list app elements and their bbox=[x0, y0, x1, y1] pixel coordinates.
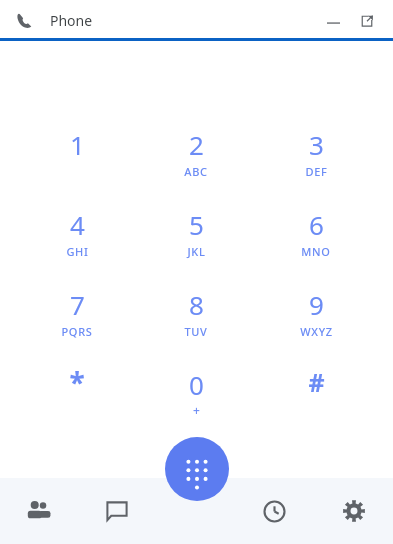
staticText: * bbox=[69, 363, 85, 401]
button[interactable]: Recents bbox=[235, 478, 314, 544]
button[interactable]: Settings bbox=[314, 478, 393, 544]
button[interactable]: Dialpad bbox=[165, 437, 229, 501]
button[interactable]: 5 bbox=[151, 207, 241, 269]
staticText: ABC bbox=[184, 164, 208, 179]
staticText: + bbox=[193, 402, 200, 418]
button[interactable]: 7 bbox=[32, 287, 122, 349]
button[interactable]: Messages bbox=[78, 478, 156, 544]
staticText: TUV bbox=[184, 324, 208, 339]
button[interactable]: 3 bbox=[271, 127, 361, 189]
staticText: JKL bbox=[187, 244, 206, 259]
staticText: # bbox=[308, 365, 325, 399]
staticText: 5 bbox=[189, 207, 204, 242]
staticText: 0 bbox=[189, 367, 204, 402]
staticText: 6 bbox=[309, 207, 324, 242]
button[interactable]: 9 bbox=[271, 287, 361, 349]
button[interactable]: Contacts bbox=[0, 478, 78, 544]
button[interactable]: 2 bbox=[151, 127, 241, 189]
button[interactable]: # bbox=[271, 365, 361, 427]
staticText: 8 bbox=[189, 287, 204, 322]
staticText: 4 bbox=[70, 207, 85, 242]
button[interactable]: 1 bbox=[32, 127, 122, 189]
button[interactable]: * bbox=[32, 363, 122, 425]
staticText: PQRS bbox=[61, 324, 93, 339]
staticText: 7 bbox=[70, 287, 85, 322]
staticText: WXYZ bbox=[300, 324, 333, 339]
staticText: 3 bbox=[309, 127, 324, 162]
button[interactable]: 8 bbox=[151, 287, 241, 349]
staticText: GHI bbox=[66, 244, 89, 259]
button[interactable]: 0 bbox=[151, 367, 241, 429]
button[interactable]: 4 bbox=[32, 207, 122, 269]
button[interactable]: 6 bbox=[271, 207, 361, 269]
staticText: DEF bbox=[305, 164, 328, 179]
staticText: 9 bbox=[309, 287, 324, 322]
button[interactable]: Open in new window bbox=[353, 7, 381, 35]
staticText: 1 bbox=[70, 127, 85, 162]
button[interactable]: Minimize bbox=[319, 7, 347, 35]
staticText: MNO bbox=[301, 244, 331, 259]
staticText: Phone bbox=[50, 11, 93, 30]
staticText: 2 bbox=[189, 127, 204, 162]
